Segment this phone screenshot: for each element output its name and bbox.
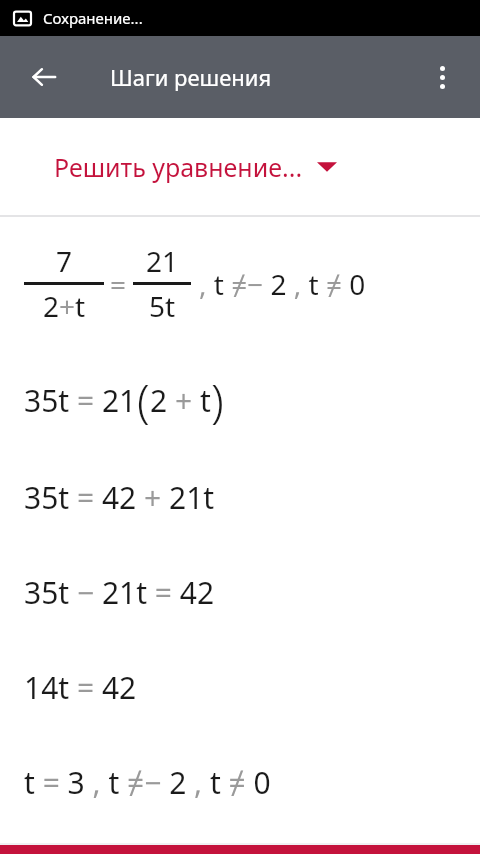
staticText: 2+t xyxy=(43,287,86,325)
staticText: = xyxy=(110,265,127,303)
button[interactable]: 7 xyxy=(0,217,480,350)
staticText: 14t = 42 xyxy=(24,667,137,708)
staticText: ( xyxy=(137,369,150,432)
staticText: 35t = 21 xyxy=(24,380,137,421)
staticText: 35t = 42 + 21t xyxy=(24,477,215,518)
button[interactable]: t = 3 , t ≠− 2 , t ≠ 0 xyxy=(0,735,480,830)
staticText: 2 + t xyxy=(150,380,211,421)
button[interactable]: Ещё xyxy=(414,49,470,105)
button[interactable]: Назад xyxy=(16,49,72,105)
staticText: Решить уравнение... xyxy=(54,150,303,184)
staticText: Шаги решения xyxy=(110,62,272,92)
staticText: ) xyxy=(211,369,224,432)
staticText: 7 xyxy=(56,242,73,280)
button[interactable]: 35t = 42 + 21t xyxy=(0,450,480,545)
staticText: 5t xyxy=(149,287,176,325)
button[interactable]: 35t = 21 xyxy=(0,350,480,450)
button[interactable]: 35t − 21t = 42 xyxy=(0,545,480,640)
staticText: Сохранение... xyxy=(43,8,143,28)
staticText: 35t − 21t = 42 xyxy=(24,572,215,613)
button[interactable]: 14t = 42 xyxy=(0,640,480,735)
staticText: t = 3 , t ≠− 2 , t ≠ 0 xyxy=(24,762,271,803)
staticText: 21 xyxy=(146,242,179,280)
staticText: , t ≠− 2 , t ≠ 0 xyxy=(199,265,366,303)
button[interactable]: Решить уравнение... xyxy=(0,118,480,215)
